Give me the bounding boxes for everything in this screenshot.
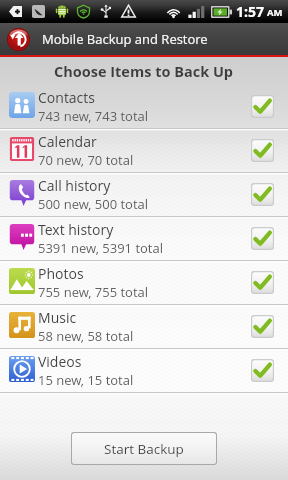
staticText: 70 new, 70 total <box>38 151 134 169</box>
button[interactable]: Calendar <box>0 128 288 172</box>
staticText: Start Backup <box>104 440 184 458</box>
button[interactable]: Text history <box>0 216 288 260</box>
button[interactable]: Toggle Text history <box>251 227 274 250</box>
button[interactable]: Contacts <box>0 84 288 128</box>
staticText: Calendar <box>38 132 97 151</box>
staticText: Choose Items to Back Up <box>54 62 234 82</box>
button[interactable]: Music <box>0 304 288 348</box>
staticText: Mobile Backup and Restore <box>42 30 208 48</box>
staticText: Text history <box>38 220 114 239</box>
button[interactable]: Toggle Calendar <box>251 139 274 162</box>
staticText: AM <box>267 6 283 19</box>
staticText: Contacts <box>38 88 95 107</box>
staticText: Call history <box>38 176 111 195</box>
other: Mobile Backup and Restore <box>7 28 30 51</box>
staticText: 743 new, 743 total <box>38 107 149 125</box>
button[interactable]: Toggle Music <box>251 315 274 338</box>
staticText: 5391 new, 5391 total <box>38 239 163 257</box>
button[interactable]: Toggle Photos <box>251 271 274 294</box>
staticText: Photos <box>38 264 84 283</box>
staticText: Music <box>38 308 77 327</box>
button[interactable]: Videos <box>0 348 288 392</box>
staticText: 15 new, 15 total <box>38 371 134 389</box>
staticText: 755 new, 755 total <box>38 283 149 301</box>
staticText: 58 new, 58 total <box>38 327 134 345</box>
staticText: 1:57 <box>236 2 264 21</box>
button[interactable]: Toggle Call history <box>251 183 274 206</box>
staticText: Videos <box>38 352 82 371</box>
button[interactable]: Photos <box>0 260 288 304</box>
button[interactable]: Toggle Contacts <box>251 95 274 118</box>
button[interactable]: Mobile Backup and Restore <box>0 23 288 55</box>
button[interactable]: Call history <box>0 172 288 216</box>
button[interactable]: Start Backup <box>71 432 217 465</box>
staticText: 500 new, 500 total <box>38 195 149 213</box>
button[interactable]: Toggle Videos <box>251 359 274 382</box>
